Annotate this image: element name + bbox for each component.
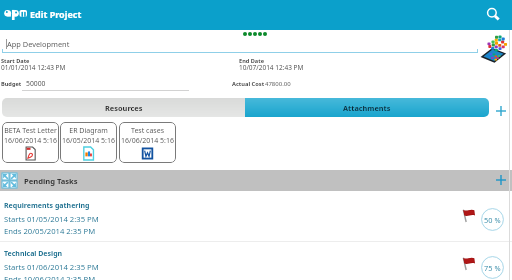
staticText: Technical Design: [4, 249, 63, 259]
button[interactable]: Collapse section: [2, 173, 17, 188]
staticText: Resources: [105, 103, 143, 113]
staticText: Test cases: [131, 126, 164, 136]
staticText: 01/01/2014 12:43 PM: [1, 63, 66, 72]
staticText: Actual Cost: [232, 80, 265, 88]
staticText: Attachments: [343, 103, 391, 113]
staticText: End Date: [239, 57, 264, 65]
staticText: 75 %: [484, 263, 501, 273]
staticText: 10/07/2014 12:43 PM: [239, 63, 304, 72]
button[interactable]: BETA Test Letter: [2, 122, 59, 163]
staticText: ER Diagram: [69, 126, 108, 136]
staticText: BETA Test Letter: [4, 126, 57, 136]
staticText: Budget: [1, 80, 22, 88]
staticText: Pending Tasks: [24, 176, 78, 186]
staticText: 16/05/2014 5:16: [62, 136, 115, 146]
button[interactable]: Add task: [494, 173, 508, 187]
staticText: App Development: [7, 39, 70, 49]
staticText: 50000: [26, 79, 46, 88]
staticText: 50 %: [484, 215, 501, 225]
button[interactable]: Resources: [2, 98, 245, 117]
button[interactable]: Requirements gathering: [0, 192, 512, 242]
button[interactable]: Technical Design: [0, 240, 512, 280]
staticText: 16/06/2014 5:16: [121, 136, 174, 146]
button[interactable]: Add attachment: [494, 104, 508, 118]
staticText: Ends 10/06/2014 2:35 PM: [4, 274, 96, 280]
staticText: Starts 01/05/2014 2:35 PM: [4, 214, 99, 224]
staticText: Ends 20/05/2014 2:35 PM: [4, 226, 96, 236]
staticText: 47800.00: [265, 80, 291, 88]
staticText: Start Date: [1, 57, 30, 65]
button[interactable]: Test cases: [119, 122, 176, 163]
staticText: Edit Project: [30, 8, 82, 20]
button[interactable]: Attachments: [245, 98, 489, 117]
staticText: Requirements gathering: [4, 201, 90, 211]
button[interactable]: Search: [484, 5, 504, 25]
staticText: Starts 01/06/2014 2:35 PM: [4, 262, 99, 272]
staticText: 16/06/2014 5:16: [4, 136, 57, 146]
button[interactable]: ER Diagram: [60, 122, 117, 163]
